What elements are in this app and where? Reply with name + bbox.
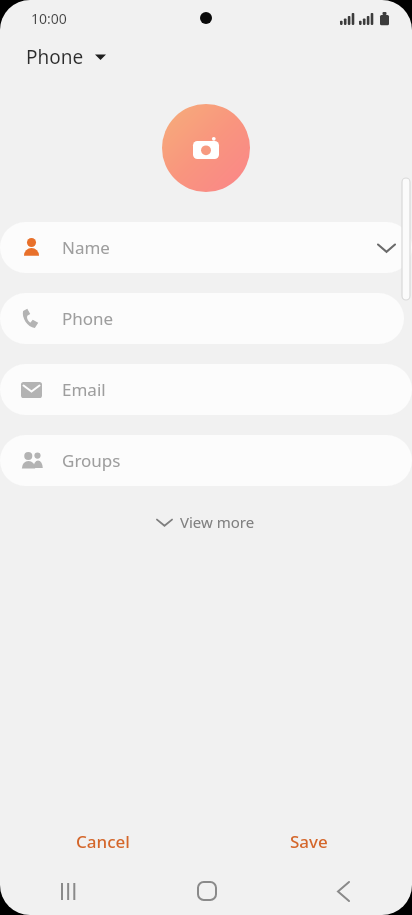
button[interactable]: Phone — [0, 293, 404, 344]
staticText: View more — [180, 512, 255, 532]
staticText: Name — [62, 236, 360, 259]
button[interactable]: Recent apps — [0, 867, 138, 915]
staticText: Phone — [62, 307, 404, 330]
button[interactable]: Phone — [26, 36, 106, 78]
staticText: Save — [290, 830, 328, 853]
button[interactable]: Cancel — [0, 817, 206, 865]
staticText: Phone — [26, 44, 84, 70]
button[interactable]: Home — [138, 867, 275, 915]
staticText: Cancel — [76, 830, 130, 853]
button[interactable]: Expand name fields — [360, 222, 412, 273]
staticText: Groups — [62, 449, 412, 472]
button[interactable]: View more — [147, 504, 265, 540]
button[interactable]: Back — [275, 867, 412, 915]
button[interactable]: Email — [0, 364, 412, 415]
button[interactable]: Save — [206, 817, 412, 865]
staticText: 10:00 — [31, 9, 67, 28]
staticText: Email — [62, 378, 412, 401]
button[interactable]: Name — [0, 222, 412, 273]
button[interactable]: Add contact photo — [162, 104, 250, 192]
button[interactable]: Groups — [0, 435, 412, 486]
